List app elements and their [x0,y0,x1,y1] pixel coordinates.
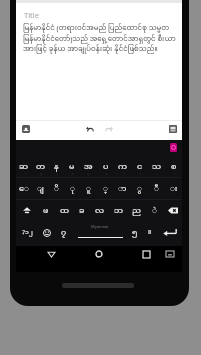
button[interactable]: ၤ [48,156,64,178]
button[interactable]: Emoji [38,221,56,246]
staticText: င [137,161,143,172]
staticText: စ [171,161,177,172]
staticText: ၇ [61,227,67,238]
staticText: လ [95,205,105,216]
staticText: ၫ [171,172,176,177]
button[interactable]: ၇ [56,221,72,246]
staticText: ?၁၂ [22,229,33,237]
button[interactable]: ၅ [128,221,142,246]
button[interactable]: More options [169,125,177,133]
staticText: ွ [137,183,142,194]
staticText: ၢ [22,172,26,177]
button[interactable]: ွ [131,178,148,200]
button[interactable]: ၦ [80,156,97,178]
staticText: တ [36,161,45,172]
staticText: ေ [19,183,29,194]
staticText: ဲ [152,205,157,216]
staticText: မ [69,161,75,172]
staticText: ၅ [132,227,138,238]
button[interactable]: Backspace [163,200,182,221]
button[interactable]: ျ [32,178,48,200]
staticText: ူ [86,183,91,194]
button[interactable]: ၨ [114,156,131,178]
button[interactable]: ၩ [131,156,148,178]
staticText: ၩ [137,172,142,177]
button[interactable]: ၫ [165,156,182,178]
staticText: န [54,161,59,172]
staticText: ည [132,205,141,216]
staticText: ဖ [43,205,49,216]
button[interactable]: Shift [16,200,37,221]
staticText: း [170,183,178,194]
staticText: ၧ [103,172,108,177]
staticText: ိ [54,183,59,194]
staticText: ု [70,183,75,194]
button[interactable]: Insert image [22,125,30,133]
staticText: ၣ [37,172,43,177]
button[interactable]: ။ [142,221,158,246]
button[interactable]: ည [127,200,145,221]
button[interactable]: ေ [16,178,32,200]
button[interactable]: ၪ [148,156,165,178]
button[interactable]: ာ [114,178,131,200]
staticText: ၪ [154,172,159,177]
button[interactable]: ူ [80,178,97,200]
button[interactable]: း [165,178,182,200]
button[interactable]: ၧ [97,156,114,178]
button[interactable]: လ [91,200,109,221]
staticText: ၦ [87,172,90,177]
staticText: ၨ [121,172,125,177]
button[interactable]: ၢ [16,156,32,178]
button[interactable]: Keyboard settings [170,143,177,152]
button[interactable]: ?၁၂ [16,221,38,246]
staticText: ထ [60,205,69,216]
staticText: ဆ [19,161,29,172]
button[interactable]: Recent apps [140,248,152,260]
staticText: ခ [79,205,85,216]
button[interactable]: ီ [148,178,165,200]
button[interactable]: ္ [97,178,114,200]
button[interactable]: ထ [55,200,73,221]
button[interactable]: ဘ [109,200,127,221]
staticText: ္ [103,183,108,194]
button[interactable]: Hide keyboard [164,248,176,260]
button[interactable]: ၥ [64,156,80,178]
button[interactable]: Enter [158,221,182,246]
staticText: ျ [37,183,44,194]
button[interactable]: ၣ [32,156,48,178]
button[interactable]: ဖ [37,200,55,221]
staticText: ၤ [54,172,58,177]
staticText: Title [24,10,39,20]
staticText: မြန်မာနိုင်ငံ (တရားဝင်အမည် ပြည်ထောင်စု သ… [23,24,180,54]
staticText: အ [84,161,93,172]
staticText: ာ [118,183,127,194]
staticText: ီ [154,183,159,194]
button[interactable]: Undo [85,124,95,134]
staticText: Myanmar [91,224,110,229]
staticText: က [118,161,127,172]
staticText: ပ [103,161,109,172]
staticText: ၥ [71,172,74,177]
staticText: ။ [148,228,152,238]
button[interactable]: Home [93,248,105,260]
button[interactable]: ု [64,178,80,200]
button[interactable]: Space [72,221,128,246]
staticText: သ [152,161,162,172]
button[interactable]: Back [45,248,57,260]
button[interactable]: ိ [48,178,64,200]
button[interactable]: ဲ [145,200,163,221]
button[interactable]: ခ [73,200,91,221]
button[interactable]: Redo [104,124,114,134]
staticText: ဘ [114,205,123,216]
